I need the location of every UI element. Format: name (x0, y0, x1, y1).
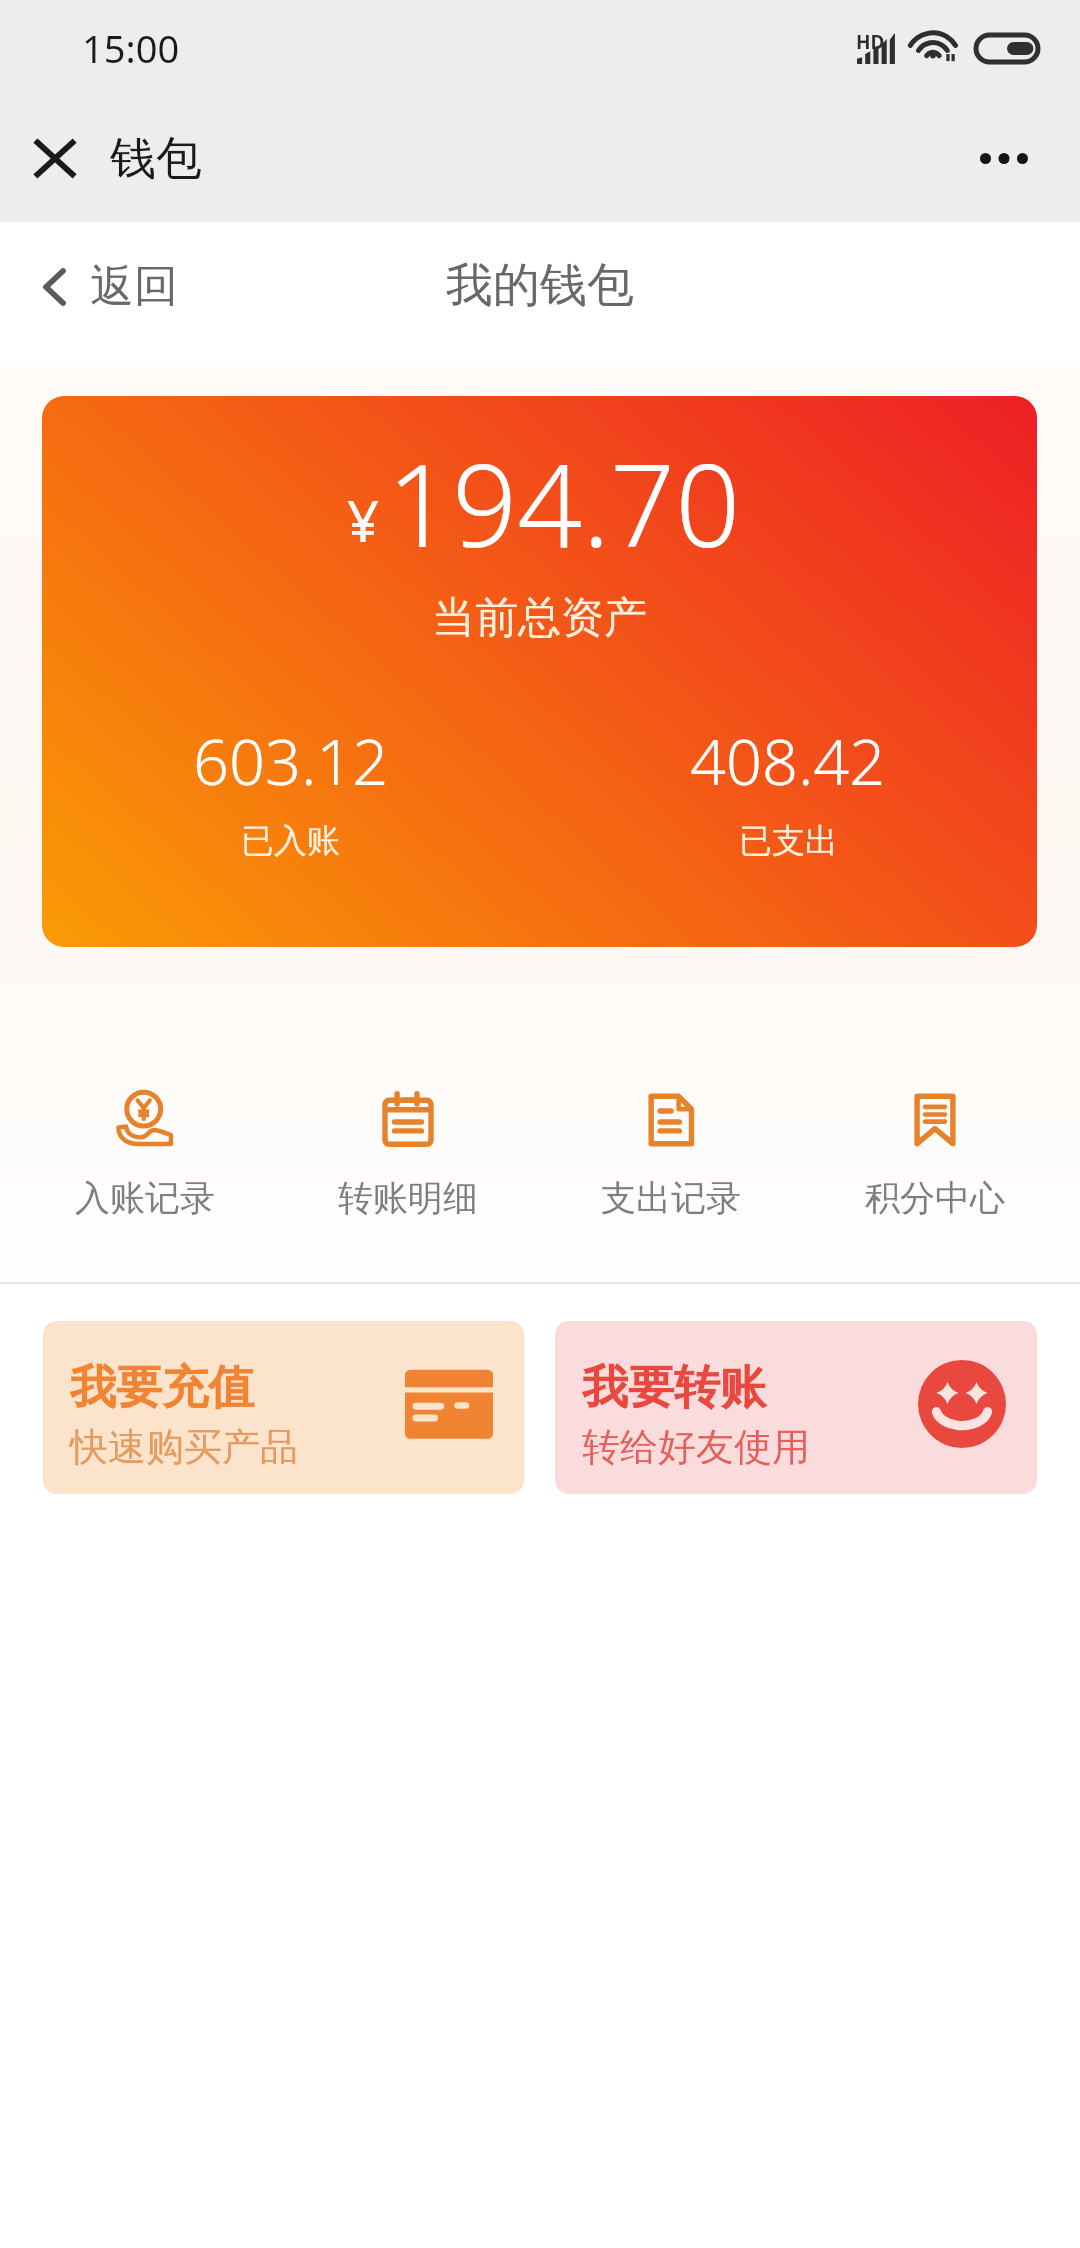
button[interactable]: 入账记录 (13, 1088, 276, 1220)
staticText: ¥ (347, 482, 380, 558)
staticText: 我要充值 (70, 1359, 254, 1417)
staticText: 408.42 (690, 718, 886, 804)
staticText: 15:00 (82, 22, 180, 74)
staticText: 钱包 (110, 130, 202, 188)
staticText: 入账记录 (75, 1176, 215, 1220)
button[interactable]: 积分中心 (803, 1088, 1067, 1220)
staticText: HD (856, 29, 885, 55)
button[interactable]: 转账明细 (276, 1088, 539, 1220)
staticText: 积分中心 (865, 1176, 1005, 1220)
button[interactable]: ¥ (42, 396, 1037, 947)
staticText: 当前总资产 (432, 591, 647, 645)
staticText: 返回 (90, 259, 178, 314)
staticText: 快速购买产品 (70, 1423, 298, 1471)
staticText: 转账明细 (338, 1176, 478, 1220)
button[interactable]: 支出记录 (539, 1088, 803, 1220)
staticText: 我要转账 (582, 1359, 766, 1417)
staticText: 转给好友使用 (582, 1423, 810, 1471)
staticText: 支出记录 (601, 1176, 741, 1220)
button[interactable]: Close (0, 95, 110, 222)
staticText: 我的钱包 (446, 256, 634, 315)
staticText: 603.12 (193, 718, 389, 804)
button[interactable]: 我要充值 (43, 1321, 524, 1494)
staticText: 已入账 (241, 820, 340, 862)
staticText: 已支出 (739, 820, 838, 862)
staticText: 194.70 (387, 425, 741, 580)
button[interactable]: 返回 (29, 243, 192, 330)
button[interactable]: More options (952, 95, 1056, 222)
button[interactable]: 我要转账 (555, 1321, 1037, 1494)
